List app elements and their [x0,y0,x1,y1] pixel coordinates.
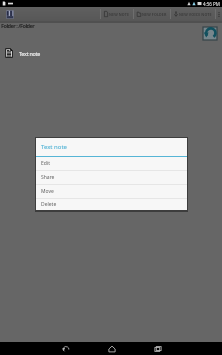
staticText: NEW FOLDER [142,12,167,17]
staticText: Text note [41,143,67,151]
staticText: Share [41,174,55,181]
staticText: NEW VOICE NOTE [179,12,212,17]
staticText: Delete [41,201,57,208]
button[interactable]: App icon [6,10,14,19]
button[interactable]: Back [59,342,72,355]
staticText: Edit [41,160,50,167]
button[interactable]: Delete [36,199,187,210]
button[interactable]: Share [36,171,187,184]
button[interactable]: More options [216,7,221,21]
button[interactable]: Edit [36,157,187,170]
staticText: Folder : /Folder [1,22,35,30]
button[interactable]: Refresh [203,27,217,40]
button[interactable]: NEW FOLDER [134,7,170,21]
staticText: 4:56 PM [203,1,220,7]
button[interactable]: Move [36,185,187,198]
button[interactable]: NEW NOTE [101,7,133,21]
button[interactable]: Home [105,342,118,355]
staticText: NEW NOTE [109,12,130,17]
staticText: Move [41,188,54,195]
button[interactable]: NEW VOICE NOTE [171,7,215,21]
button[interactable]: Text note [0,45,222,61]
staticText: Text note [19,50,41,57]
button[interactable]: Recents [151,342,164,355]
